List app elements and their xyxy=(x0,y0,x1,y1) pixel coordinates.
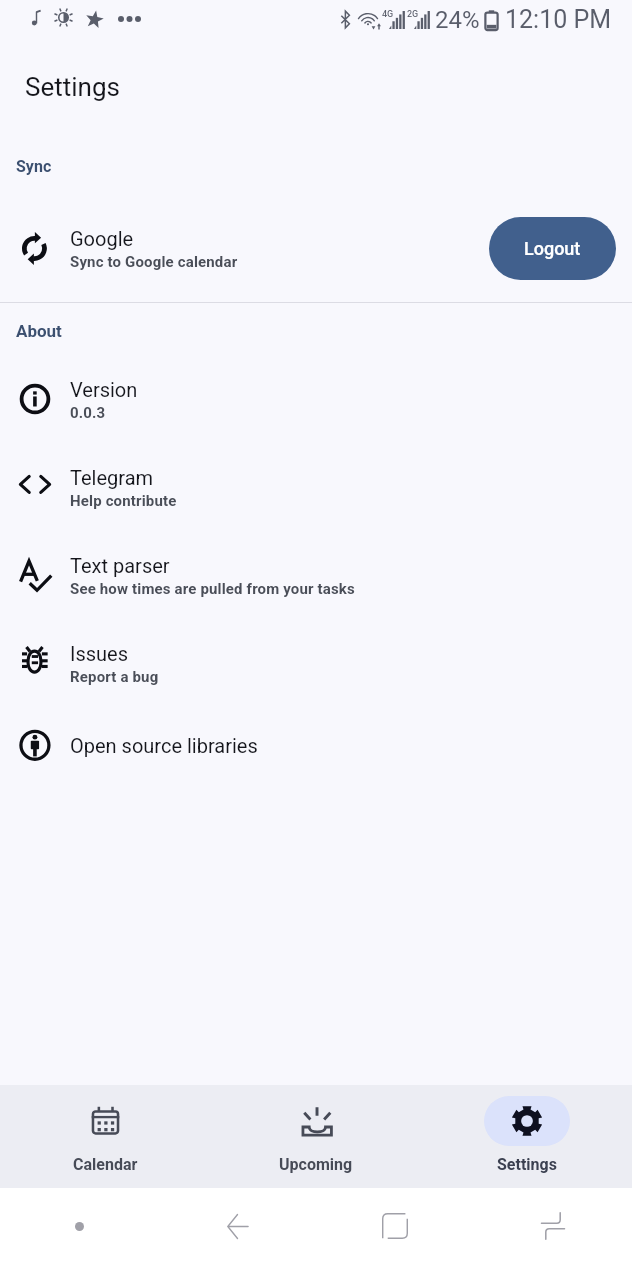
staticText: Open source libraries xyxy=(70,734,258,757)
button[interactable]: Version xyxy=(0,358,632,446)
staticText: 2G xyxy=(407,9,419,20)
staticText: Telegram xyxy=(70,466,154,489)
staticText: Help contribute xyxy=(70,492,177,510)
staticText: Upcoming xyxy=(279,1155,353,1174)
staticText: Issues xyxy=(70,642,129,665)
staticText: See how times are pulled from your tasks xyxy=(70,580,355,598)
staticText: Google xyxy=(70,227,134,250)
staticText: Logout xyxy=(524,238,581,259)
staticText: 4G xyxy=(382,9,394,20)
button[interactable]: Settings xyxy=(421,1085,632,1188)
button[interactable]: Text parser xyxy=(0,534,632,622)
staticText: Sync xyxy=(16,157,52,176)
staticText: Text parser xyxy=(70,554,170,577)
staticText: Version xyxy=(70,378,138,401)
staticText: Calendar xyxy=(73,1155,138,1174)
staticText: Report a bug xyxy=(70,668,159,686)
staticText: Settings xyxy=(497,1155,557,1174)
staticText: Settings xyxy=(25,72,120,102)
staticText: 0.0.3 xyxy=(70,404,106,422)
other: Home xyxy=(382,1213,408,1239)
button[interactable]: Logout xyxy=(489,217,616,280)
button[interactable]: Google account sync xyxy=(0,207,480,295)
other: Recent apps xyxy=(541,1212,565,1240)
other: Back xyxy=(226,1214,249,1239)
staticText: 24% xyxy=(435,6,480,34)
staticText: 12:10 PM xyxy=(505,5,612,34)
button[interactable]: Open source libraries xyxy=(0,710,632,798)
button[interactable]: Calendar xyxy=(0,1085,210,1188)
button[interactable]: Upcoming xyxy=(210,1085,421,1188)
staticText: About xyxy=(16,321,62,341)
staticText: Sync to Google calendar xyxy=(70,253,238,271)
button[interactable]: Issues xyxy=(0,622,632,710)
button[interactable]: Telegram xyxy=(0,446,632,534)
